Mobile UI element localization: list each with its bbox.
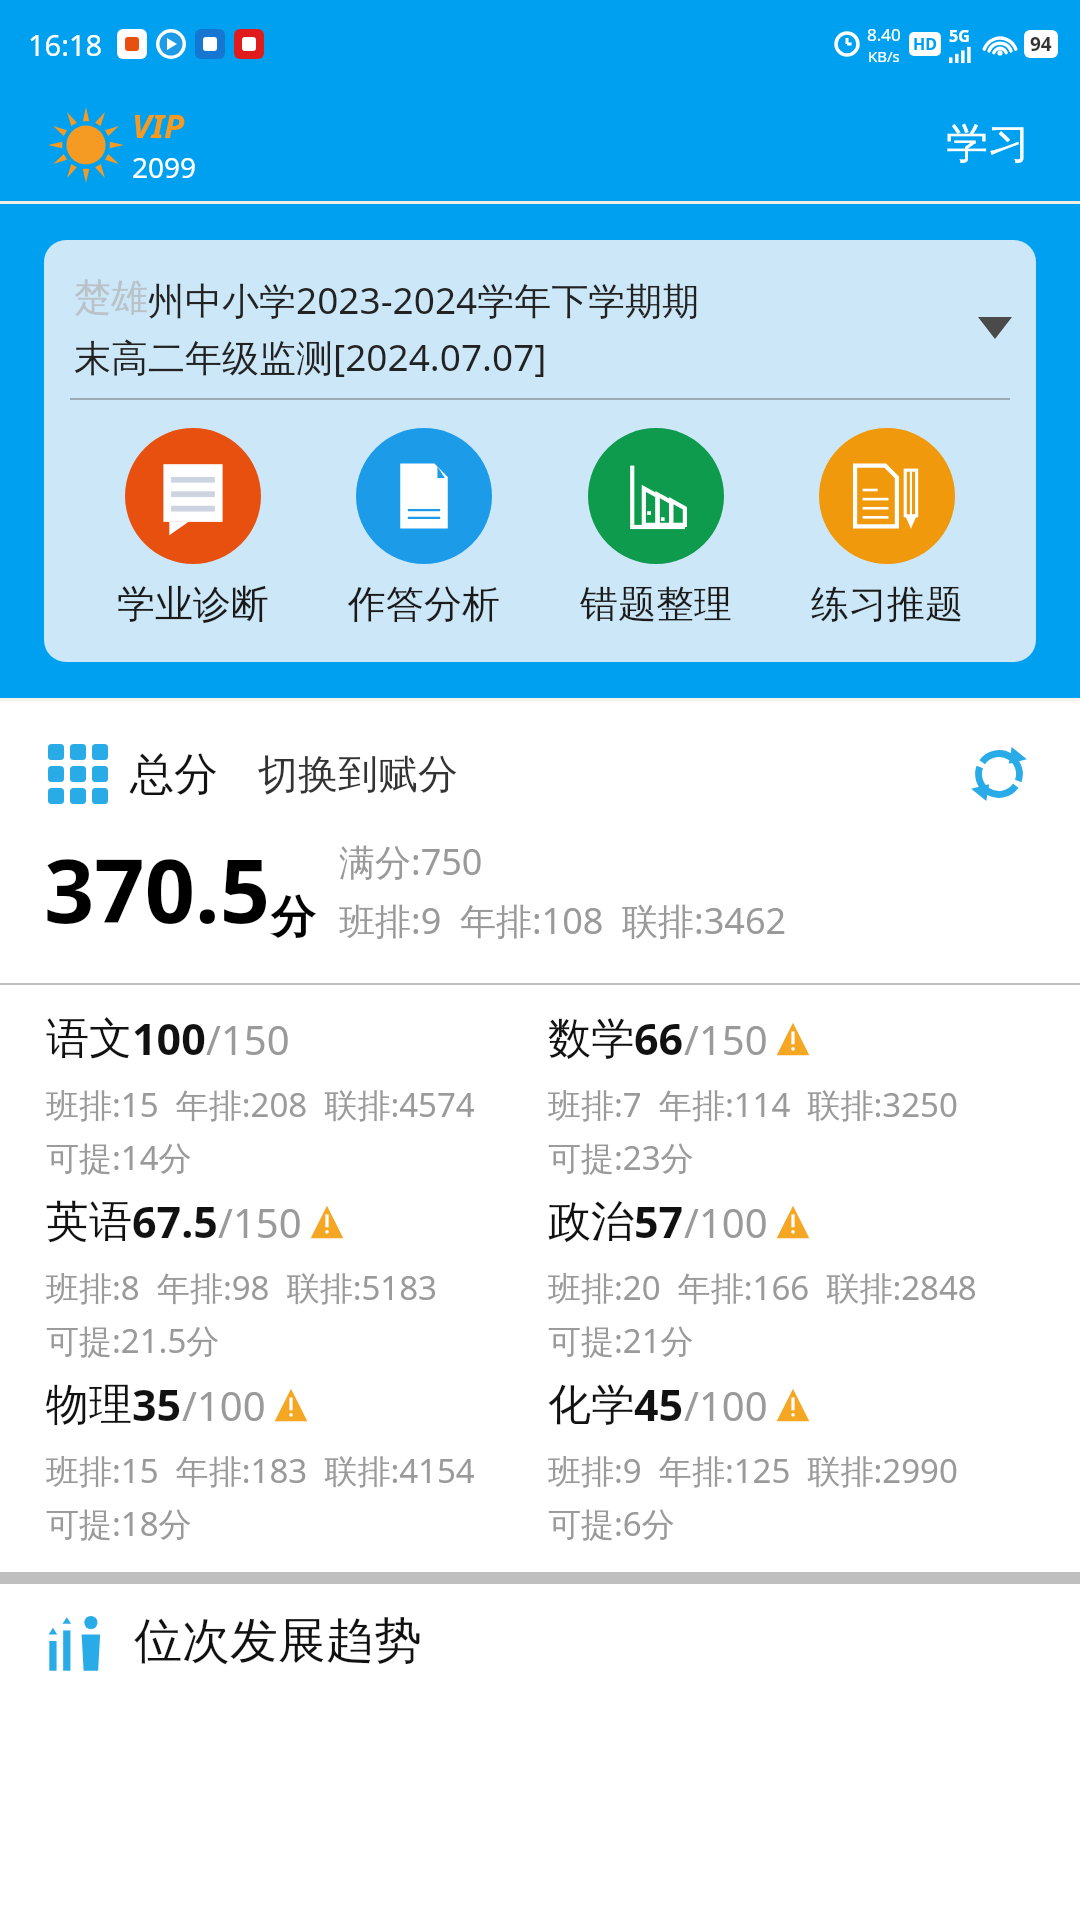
staticText: 2099 xyxy=(132,148,197,186)
button[interactable]: 练习推题 xyxy=(805,428,969,628)
staticText: 物理 xyxy=(46,1378,132,1432)
staticText: 楚雄 xyxy=(74,274,148,321)
button[interactable]: 数学 xyxy=(548,1009,1080,1192)
button[interactable]: 总分 xyxy=(130,747,218,802)
staticText: 错题整理 xyxy=(580,580,732,628)
staticText: 学业诊断 xyxy=(117,580,269,628)
staticText: 5G xyxy=(949,25,970,47)
staticText: /150 xyxy=(206,1012,290,1066)
staticText: 班排:15 年排:183 联排:4154 xyxy=(46,1448,475,1493)
staticText: 班排:9 年排:125 联排:2990 xyxy=(548,1448,958,1493)
staticText: 370.5 xyxy=(44,829,271,949)
staticText: 94 xyxy=(1030,31,1052,57)
staticText: 分 xyxy=(271,890,315,945)
staticText: 可提:6分 xyxy=(548,1501,675,1546)
staticText: 班排:15 年排:208 联排:4574 xyxy=(46,1082,475,1127)
staticText: 政治 xyxy=(548,1195,634,1249)
staticText: 35 xyxy=(132,1375,182,1434)
button[interactable]: 楚雄 xyxy=(44,240,1036,398)
staticText: 66 xyxy=(634,1009,684,1068)
staticText: 英语 xyxy=(46,1195,132,1249)
staticText: 班排:8 年排:98 联排:5183 xyxy=(46,1265,437,1310)
button[interactable]: 学习 xyxy=(940,112,1036,177)
staticText: /100 xyxy=(684,1195,768,1249)
staticText: 57 xyxy=(634,1192,684,1251)
staticText: 16:18 xyxy=(28,25,103,64)
staticText: /100 xyxy=(182,1378,266,1432)
button[interactable]: 刷新 xyxy=(962,737,1036,811)
button[interactable]: 位次发展趋势 xyxy=(0,1598,1080,1704)
staticText: /100 xyxy=(684,1378,768,1432)
staticText: 可提:21.5分 xyxy=(46,1318,220,1363)
button[interactable]: 作答分析 xyxy=(342,428,506,628)
staticText: 学习 xyxy=(946,118,1030,171)
staticText: HD xyxy=(913,33,937,55)
staticText: 班排:7 年排:114 联排:3250 xyxy=(548,1082,958,1127)
staticText: 位次发展趋势 xyxy=(134,1611,422,1671)
button[interactable]: 英语 xyxy=(46,1192,540,1375)
staticText: 数学 xyxy=(548,1012,634,1066)
staticText: 练习推题 xyxy=(811,580,963,628)
staticText: 切换到赋分 xyxy=(258,749,458,799)
staticText: 100 xyxy=(132,1009,206,1068)
staticText: 可提:23分 xyxy=(548,1135,694,1180)
staticText: 班排:20 年排:166 联排:2848 xyxy=(548,1265,977,1310)
button[interactable]: 切换到赋分 xyxy=(258,749,458,799)
staticText: 满分:750 xyxy=(339,837,483,886)
staticText: 语文 xyxy=(46,1012,132,1066)
button[interactable]: 错题整理 xyxy=(574,428,738,628)
staticText: /150 xyxy=(684,1012,768,1066)
button[interactable]: 政治 xyxy=(548,1192,1080,1375)
staticText: 可提:21分 xyxy=(548,1318,694,1363)
staticText: 末高二年级监测[2024.07.07] xyxy=(74,331,547,382)
staticText: 化学 xyxy=(548,1378,634,1432)
button[interactable]: 化学 xyxy=(548,1375,1080,1558)
button[interactable]: 物理 xyxy=(46,1375,540,1558)
staticText: 可提:14分 xyxy=(46,1135,192,1180)
staticText: VIP xyxy=(132,103,185,148)
staticText: /150 xyxy=(218,1195,302,1249)
staticText: 8.40 xyxy=(867,23,901,46)
staticText: KB/s xyxy=(868,46,900,66)
staticText: 班排:9 年排:108 联排:3462 xyxy=(339,896,787,945)
button[interactable]: VIP xyxy=(46,103,201,186)
staticText: 67.5 xyxy=(132,1192,218,1251)
staticText: 总分 xyxy=(130,747,218,802)
staticText: 45 xyxy=(634,1375,684,1434)
button[interactable]: 语文 xyxy=(46,1009,540,1192)
staticText: 可提:18分 xyxy=(46,1501,192,1546)
staticText: 作答分析 xyxy=(348,580,500,628)
staticText: 州中小学2023-2024学年下学期期 xyxy=(148,274,700,325)
button[interactable]: 学业诊断 xyxy=(111,428,275,628)
